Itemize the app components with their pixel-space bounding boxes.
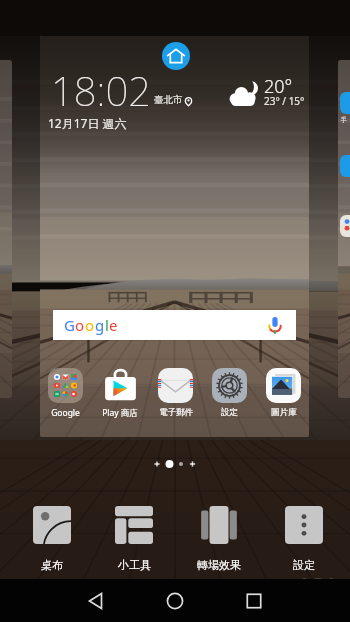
staticText: G <box>64 315 75 335</box>
button[interactable]: 圖片庫 <box>264 368 303 418</box>
button[interactable]: Home <box>154 580 196 622</box>
staticText: 手 <box>341 116 347 124</box>
button[interactable]: Play 商店 <box>100 368 140 419</box>
button[interactable]: Recent apps <box>233 580 275 622</box>
staticText: o <box>75 315 85 335</box>
staticText: 電子郵件 <box>159 407 193 418</box>
staticText: 23° / 15° <box>264 94 305 108</box>
staticText: 轉場效果 <box>197 558 241 572</box>
staticText: 18:02 <box>51 63 151 117</box>
button[interactable]: Set as home page <box>162 42 190 70</box>
button[interactable]: Voice search <box>264 314 286 336</box>
button[interactable]: Back <box>75 580 117 622</box>
staticText: 小工具 <box>118 558 151 572</box>
staticText: 臺北市 <box>154 94 183 106</box>
staticText: g <box>95 315 105 335</box>
staticText: e <box>109 315 118 335</box>
staticText: 設定 <box>221 407 238 418</box>
button[interactable]: 設定 <box>281 503 327 575</box>
button[interactable]: 轉場效果 <box>193 503 245 575</box>
button[interactable]: 設定 <box>210 368 249 418</box>
staticText: o <box>85 315 95 335</box>
staticText: 20° <box>264 74 293 99</box>
button[interactable]: G <box>53 310 296 340</box>
staticText: 圖片庫 <box>271 407 297 418</box>
staticText: 桌布 <box>41 558 63 572</box>
staticText: Google <box>51 407 80 419</box>
button[interactable]: Google <box>46 368 85 419</box>
staticText: Play 商店 <box>102 407 138 419</box>
button[interactable]: 電子郵件 <box>156 368 195 418</box>
staticText: 設定 <box>293 558 315 572</box>
staticText: l <box>105 315 109 335</box>
button[interactable]: 小工具 <box>111 503 157 575</box>
staticText: 12月17日 週六 <box>48 115 127 131</box>
button[interactable]: 桌布 <box>29 503 75 575</box>
